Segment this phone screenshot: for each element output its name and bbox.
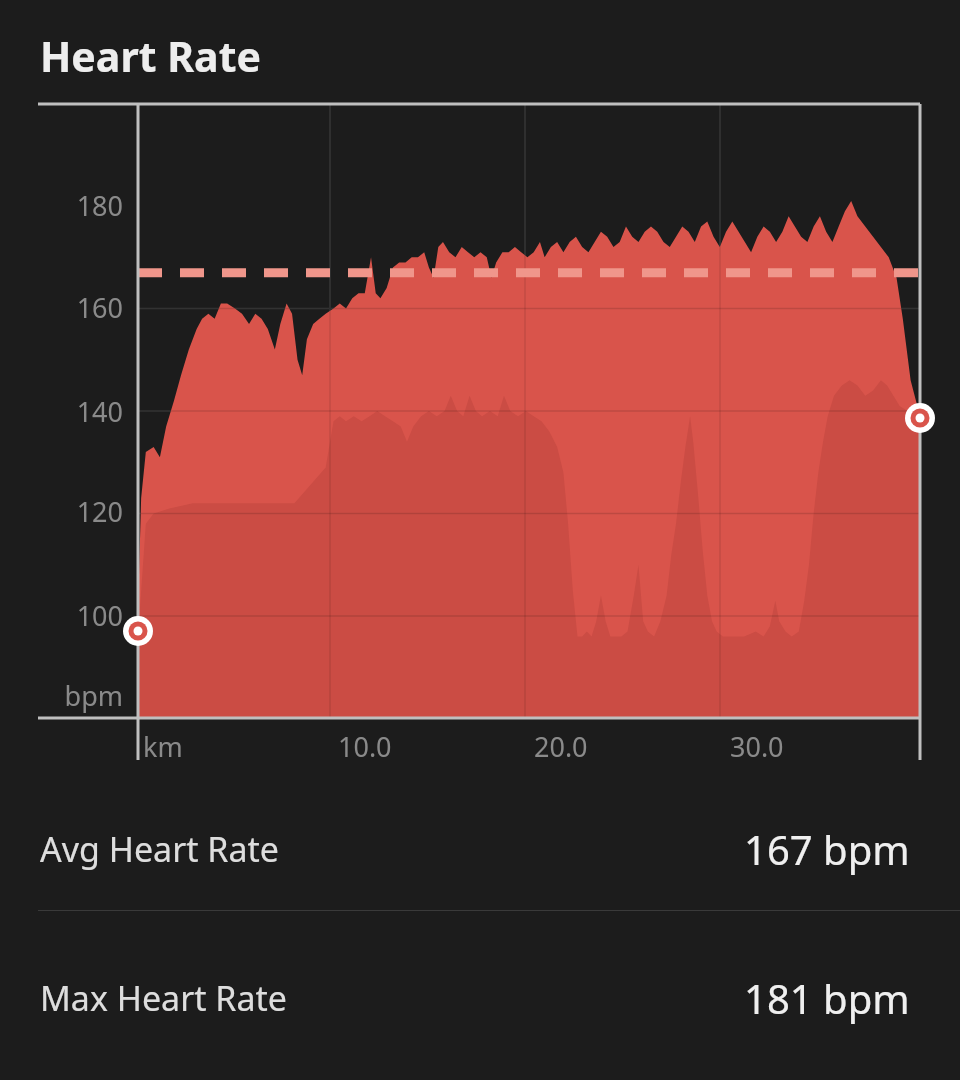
staticText: bpm	[0, 677, 123, 714]
staticText: 167 bpm	[744, 822, 910, 876]
staticText: 140	[0, 393, 123, 430]
staticText: 100	[0, 597, 123, 634]
staticText: 160	[0, 289, 123, 326]
staticText: km	[143, 728, 183, 765]
button[interactable]: Max Heart Rate	[0, 911, 960, 1059]
button[interactable]: Heart rate chart	[0, 84, 960, 784]
staticText: 180	[0, 187, 123, 224]
staticText: 10.0	[338, 728, 392, 765]
staticText: Heart Rate	[40, 28, 261, 84]
staticText: 30.0	[730, 728, 784, 765]
staticText: Max Heart Rate	[40, 975, 288, 1021]
staticText: 181 bpm	[744, 971, 910, 1025]
staticText: 120	[0, 493, 123, 530]
staticText: Avg Heart Rate	[40, 826, 280, 872]
button[interactable]: Avg Heart Rate	[0, 784, 960, 910]
staticText: 20.0	[534, 728, 588, 765]
